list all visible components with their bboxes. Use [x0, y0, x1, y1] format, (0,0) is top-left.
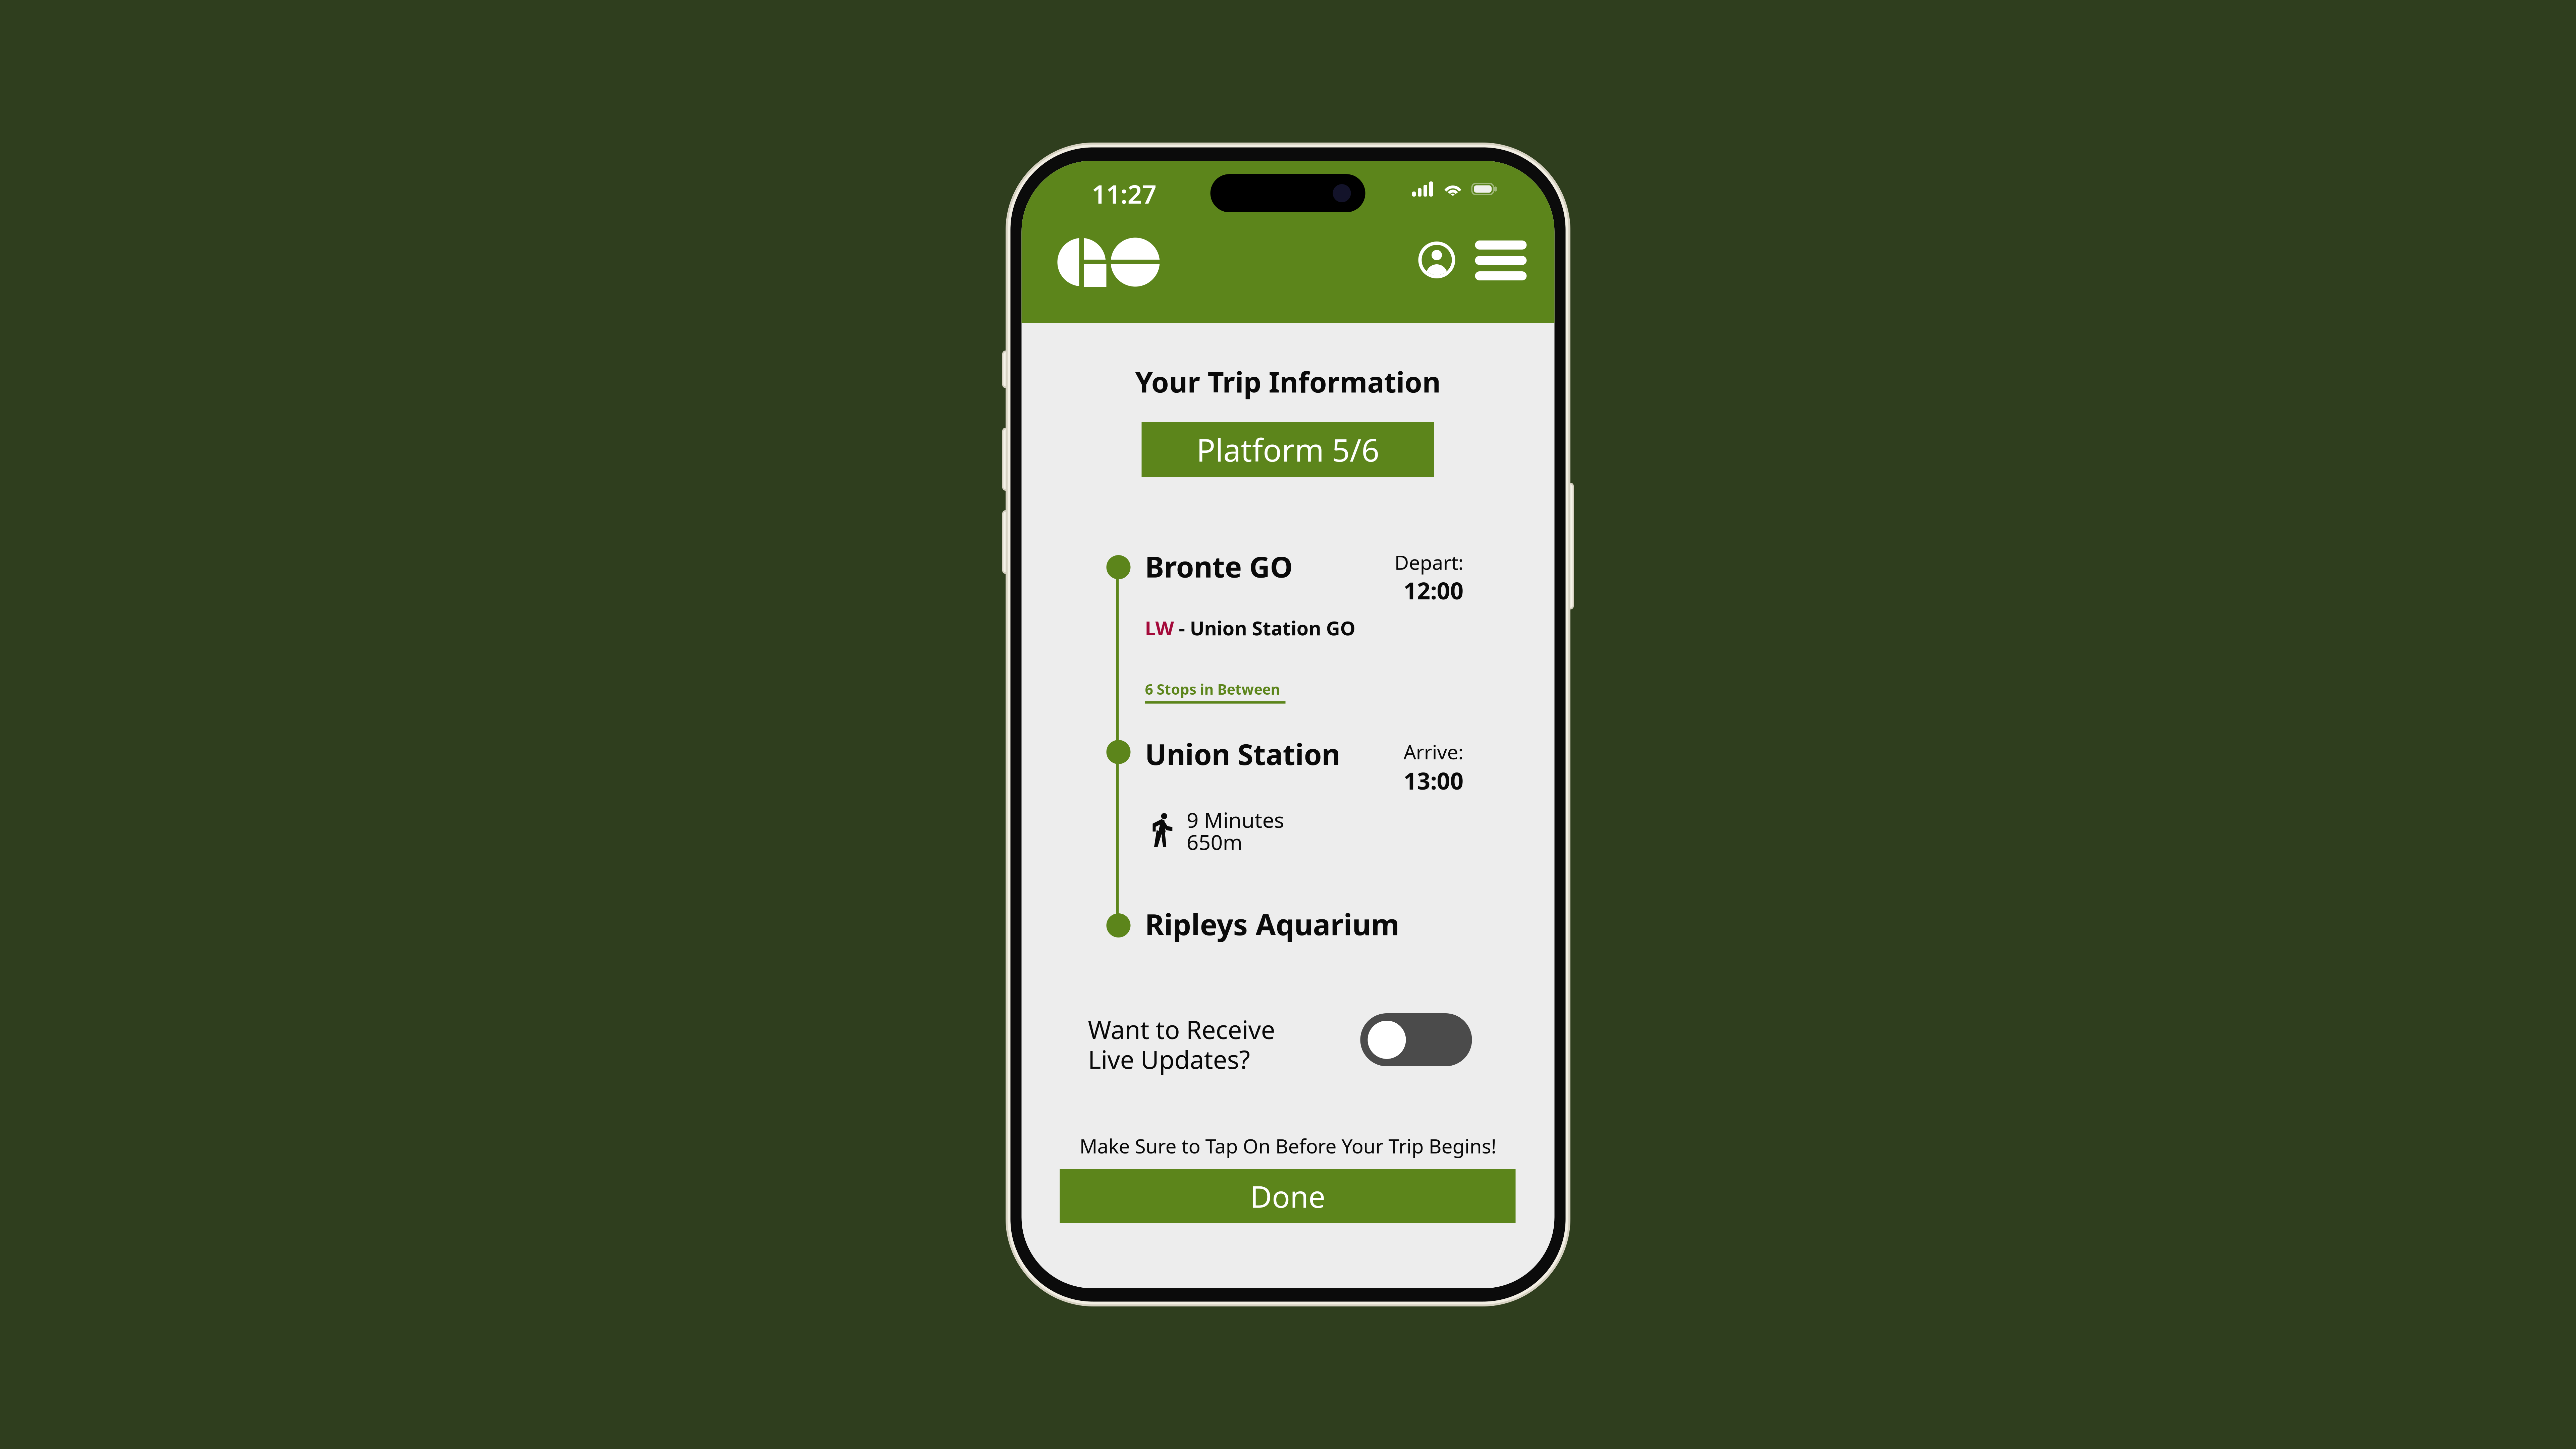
staticText: 11:27	[1092, 177, 1156, 211]
button[interactable]: Done	[1060, 1169, 1516, 1223]
staticText: Bronte GO	[1145, 547, 1293, 585]
button[interactable]: Account	[1409, 226, 1465, 293]
button[interactable]: GO Transit home	[1022, 228, 1173, 296]
staticText: 9 Minutes	[1187, 806, 1284, 834]
staticText: Your Trip Information	[1135, 363, 1441, 400]
staticText: Arrive:	[1404, 739, 1464, 765]
staticText: Ripleys Aquarium	[1145, 905, 1400, 943]
button[interactable]: 6 Stops in Between	[1145, 680, 1285, 704]
staticText: Want to Receive	[1088, 1013, 1275, 1046]
staticText: Depart:	[1394, 549, 1464, 575]
button[interactable]: Platform 5/6	[1142, 422, 1434, 477]
staticText: 6 Stops in Between	[1145, 680, 1280, 699]
staticText: Done	[1250, 1176, 1325, 1216]
staticText: 13:00	[1404, 765, 1464, 796]
staticText: 12:00	[1404, 575, 1464, 606]
staticText: Union Station	[1145, 735, 1340, 773]
button[interactable]: Receive live updates	[1360, 1013, 1472, 1066]
staticText: 650m	[1187, 828, 1243, 856]
staticText: Platform 5/6	[1196, 429, 1379, 470]
staticText: LW	[1145, 615, 1174, 641]
staticText: Make Sure to Tap On Before Your Trip Beg…	[1080, 1133, 1496, 1159]
staticText: - Union Station GO	[1174, 615, 1355, 641]
button[interactable]: Menu	[1465, 226, 1537, 294]
staticText: Live Updates?	[1088, 1042, 1250, 1076]
